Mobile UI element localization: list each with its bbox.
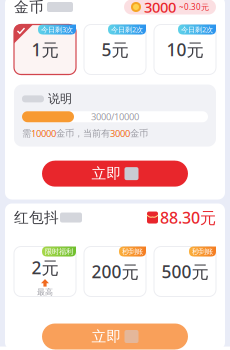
staticText: 金币，当前有 [56,128,110,139]
staticText: 今日剩2次 [181,25,213,34]
staticText: 说明 [48,91,72,106]
staticText: 最高 [37,287,53,297]
button[interactable]: 2元 [14,246,76,296]
staticText: 10元 [166,38,203,61]
staticText: 500元 [161,260,208,283]
staticText: 金币 [14,0,44,16]
button[interactable]: 立即 [42,323,188,349]
button[interactable]: 5元 [84,24,146,74]
staticText: 秒到账 [122,247,143,256]
staticText: 200元 [91,260,138,283]
staticText: 5元 [101,38,128,61]
staticText: ~0.30元 [179,2,209,12]
staticText: 金币 [130,128,148,139]
button[interactable]: 500元 [154,246,216,296]
button[interactable]: 立即 [42,161,188,187]
button[interactable]: 10元 [154,24,216,74]
staticText: 1元 [31,38,58,61]
staticText: 限时福利 [45,247,73,256]
staticText: 2元 [31,256,58,279]
button[interactable]: 3000 [124,0,216,14]
staticText: 10000 [31,127,56,140]
button[interactable]: 200元 [84,246,146,296]
button[interactable]: 1元 [14,24,76,74]
staticText: 3000 [144,0,176,17]
staticText: 立即 [91,327,121,345]
staticText: 今日剩2次 [111,25,143,34]
staticText: 今日剩3次 [41,25,73,34]
staticText: 3000/10000 [91,110,139,123]
staticText: 立即 [91,165,121,183]
staticText: 红包抖 [14,208,59,226]
staticText: 秒到账 [192,247,213,256]
staticText: 3000 [110,127,130,140]
staticText: 需 [22,128,31,139]
staticText: 88.30元 [160,207,216,228]
